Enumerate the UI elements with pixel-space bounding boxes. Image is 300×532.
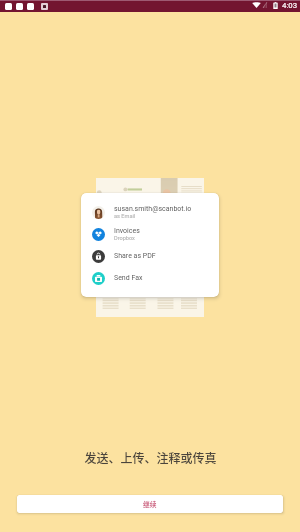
- staticText: Send Fax: [114, 274, 143, 282]
- staticText: 继续: [143, 499, 157, 509]
- other: Wi-Fi: [252, 2, 261, 8]
- staticText: susan.smith@scanbot.io: [114, 205, 192, 213]
- button[interactable]: Share as PDF: [81, 245, 219, 267]
- staticText: 4:03: [282, 1, 298, 10]
- staticText: Share as PDF: [114, 252, 156, 260]
- staticText: 发送、上传、注释或传真: [84, 449, 217, 466]
- button[interactable]: Send Fax: [81, 267, 219, 289]
- staticText: Invoices: [114, 227, 140, 235]
- button[interactable]: 继续: [17, 495, 283, 513]
- staticText: as Email: [114, 213, 136, 220]
- staticText: Dropbox: [114, 235, 135, 242]
- button[interactable]: susan.smith@scanbot.io: [81, 201, 219, 223]
- button[interactable]: Invoices: [81, 223, 219, 245]
